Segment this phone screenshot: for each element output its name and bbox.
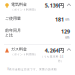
staticText: 4,264円 xyxy=(45,47,64,54)
staticText: （ポイント利用前） xyxy=(11,8,38,11)
staticText: 円） xyxy=(58,59,64,63)
staticText: 電気料金 xyxy=(11,2,27,7)
staticText: kWh xyxy=(65,36,70,39)
staticText: 181 xyxy=(55,16,64,23)
staticText: ガス料金 xyxy=(11,47,27,52)
staticText: ご使用量 xyxy=(5,16,21,21)
staticText: 5,139円 xyxy=(45,2,64,9)
staticText: 129 xyxy=(61,28,70,35)
staticText: ※表示金額は目安です。実際の請求額 xyxy=(7,67,57,71)
button[interactable]: 電気料金 xyxy=(0,0,75,11)
staticText: kWh xyxy=(65,18,70,21)
button[interactable]: ガス料金 xyxy=(0,45,75,63)
staticText: （うち基本料 44 xyxy=(41,55,64,58)
staticText: 前年同月と比 xyxy=(5,28,21,38)
staticText: （ポイント利用前） xyxy=(11,53,38,56)
